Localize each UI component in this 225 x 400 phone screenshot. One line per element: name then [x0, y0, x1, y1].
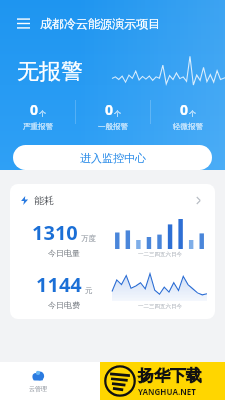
staticText: 元	[85, 286, 93, 295]
staticText: 扬华下载	[138, 366, 202, 386]
staticText: 无报警	[17, 58, 83, 86]
staticText: 一二三四五六日今	[138, 251, 182, 258]
staticText: 今日电费	[48, 300, 80, 310]
button[interactable]: 能耗	[10, 184, 215, 319]
staticText: 云管理	[29, 385, 47, 393]
staticText: YANGHUA.NET	[138, 386, 196, 397]
button[interactable]: 进入监控中心	[13, 145, 212, 170]
staticText: 成都冷云能源演示项目	[40, 16, 160, 31]
staticText: 万度	[81, 234, 96, 243]
staticText: 0	[30, 100, 39, 119]
button[interactable]: 0	[0, 100, 75, 131]
staticText: 严重报警	[23, 122, 53, 131]
staticText: 一般报警	[98, 122, 128, 131]
staticText: 1144	[36, 271, 82, 298]
staticText: 进入监控中心	[80, 151, 146, 165]
staticText: 1310	[32, 219, 78, 246]
staticText: 能耗	[34, 194, 54, 207]
button[interactable]: 0	[151, 100, 225, 131]
staticText: 0	[105, 100, 114, 119]
staticText: 个	[114, 109, 121, 118]
staticText: 个	[189, 109, 196, 118]
staticText: 0	[180, 100, 189, 119]
button[interactable]: 云管理	[0, 362, 75, 400]
staticText: 一二三四五六日今	[138, 303, 182, 310]
staticText: 今日电量	[48, 248, 80, 258]
button[interactable]: Menu	[12, 12, 34, 34]
staticText: 轻微报警	[173, 122, 203, 131]
button[interactable]: 0	[76, 100, 150, 131]
staticText: 个	[39, 109, 46, 118]
button[interactable]: More	[191, 193, 205, 207]
